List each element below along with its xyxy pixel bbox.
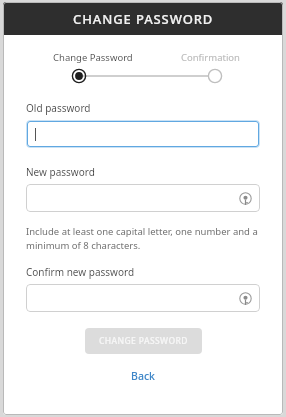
button[interactable]: CHANGE PASSWORD bbox=[85, 328, 202, 354]
button[interactable]: Show password bbox=[26, 184, 260, 212]
button[interactable]: Show password bbox=[237, 290, 253, 306]
button[interactable] bbox=[27, 121, 259, 147]
staticText: Old password bbox=[26, 101, 91, 115]
staticText: Confirm new password bbox=[26, 265, 135, 279]
staticText: Include at least one capital letter, one… bbox=[26, 225, 260, 252]
staticText: CHANGE PASSWORD bbox=[99, 335, 188, 347]
staticText: New password bbox=[26, 165, 95, 179]
staticText: Confirmation bbox=[181, 51, 240, 64]
staticText: Change Password bbox=[53, 51, 133, 64]
staticText: Back bbox=[131, 369, 155, 383]
staticText: CHANGE PASSWORD bbox=[73, 10, 214, 28]
button[interactable]: Show password bbox=[26, 284, 260, 312]
button[interactable]: Show password bbox=[237, 190, 253, 206]
button[interactable]: Back bbox=[123, 367, 163, 385]
